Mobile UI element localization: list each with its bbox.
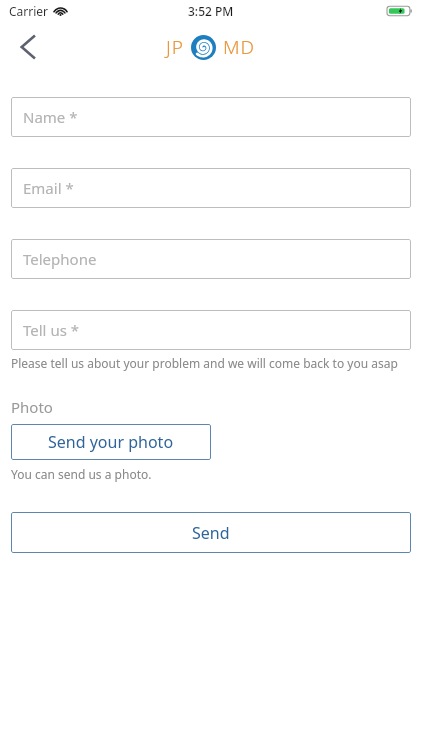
button[interactable]: Send your photo — [11, 424, 211, 460]
staticText: JP — [166, 34, 184, 60]
button[interactable]: Email * — [11, 168, 411, 208]
button[interactable]: Back — [6, 25, 50, 69]
staticText: Telephone — [23, 249, 97, 269]
staticText: You can send us a photo. — [11, 466, 152, 482]
staticText: Name * — [23, 107, 78, 127]
staticText: Send — [192, 522, 230, 544]
staticText: Carrier — [9, 3, 49, 19]
button[interactable]: Tell us * — [11, 310, 411, 350]
staticText: Photo — [11, 397, 53, 417]
button[interactable]: Telephone — [11, 239, 411, 279]
staticText: MD — [223, 34, 256, 60]
staticText: Send your photo — [48, 431, 174, 453]
staticText: Please tell us about your problem and we… — [11, 355, 398, 371]
staticText: 3:52 PM — [188, 3, 234, 19]
staticText: Email * — [23, 178, 74, 198]
button[interactable]: Send — [11, 512, 411, 553]
staticText: Tell us * — [23, 320, 80, 340]
button[interactable]: Name * — [11, 97, 411, 137]
